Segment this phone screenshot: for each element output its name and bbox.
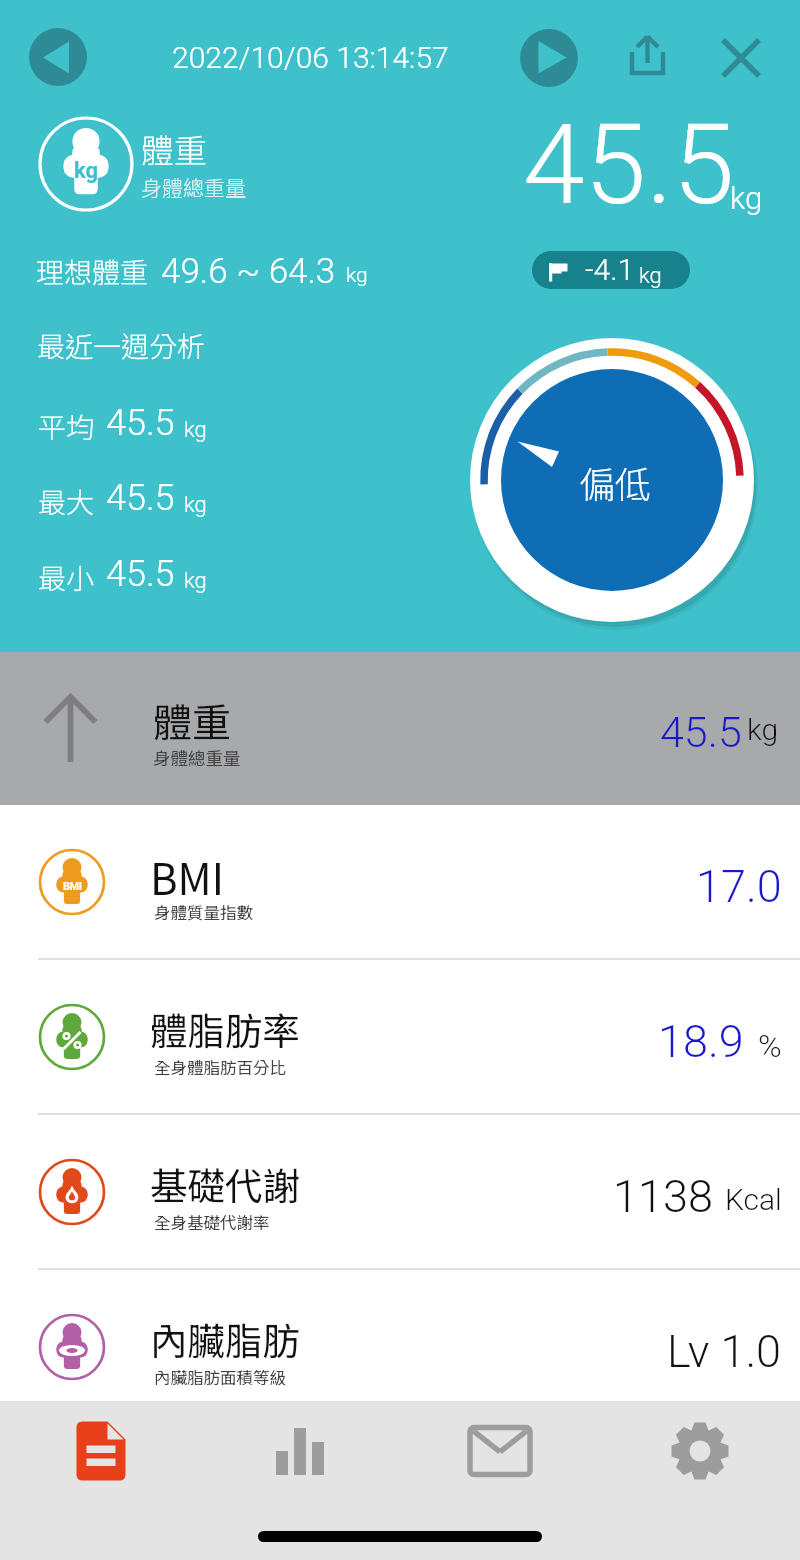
staticText: 45.5 (106, 553, 175, 595)
staticText: kg (747, 712, 779, 747)
staticText: BMI (150, 846, 225, 907)
staticText: kg (74, 158, 99, 184)
button[interactable]: 內臟脂肪 (0, 1270, 800, 1423)
staticText: 最近一週分析 (37, 325, 206, 366)
staticText: kg (184, 417, 207, 443)
staticText: BMI (63, 880, 82, 893)
button[interactable]: Records (51, 1401, 151, 1501)
staticText: 最大 (38, 481, 95, 522)
staticText: 49.6 ~ 64.3 (161, 251, 336, 292)
staticText: 內臟脂肪面積等級 (154, 1365, 286, 1389)
staticText: kg (639, 263, 662, 289)
button[interactable]: Mail (450, 1401, 550, 1501)
staticText: kg (184, 568, 207, 594)
staticText: Kcal (725, 1182, 782, 1217)
staticText: 平均 (38, 406, 95, 447)
staticText: 內臟脂肪 (150, 1311, 300, 1365)
button[interactable]: 體重 (0, 652, 800, 805)
staticText: kg (346, 263, 368, 288)
staticText: 全身體脂肪百分比 (154, 1055, 286, 1079)
button[interactable]: -4.1 (532, 251, 690, 289)
staticText: 身體總重量 (153, 745, 241, 770)
staticText: 體重 (153, 692, 232, 748)
staticText: 全身基礎代謝率 (154, 1210, 270, 1234)
button[interactable]: Share (612, 22, 682, 92)
staticText: 體重 (141, 125, 207, 173)
staticText: 45.5 (106, 402, 175, 444)
staticText: kg (184, 492, 207, 518)
staticText: 17.0 (696, 860, 782, 913)
staticText: 45.5 (523, 100, 735, 230)
button[interactable]: Settings (650, 1401, 750, 1501)
button[interactable]: Close (706, 22, 776, 92)
button[interactable]: Back (29, 28, 87, 86)
staticText: 理想體重 (36, 251, 149, 292)
staticText: 基礎代謝 (150, 1156, 300, 1210)
staticText: 2022/10/06 13:14:57 (172, 40, 449, 75)
staticText: % (758, 1027, 782, 1065)
staticText: 偏低 (579, 456, 652, 508)
staticText: 體脂肪率 (150, 1001, 300, 1055)
button[interactable]: 基礎代謝 (0, 1115, 800, 1268)
staticText: 45.5 (660, 707, 742, 757)
staticText: -4.1 (585, 252, 635, 287)
staticText: 最小 (38, 557, 95, 598)
staticText: kg (730, 180, 763, 216)
staticText: 身體質量指數 (154, 900, 253, 924)
button[interactable]: Charts (250, 1401, 350, 1501)
staticText: 1138 (613, 1170, 713, 1223)
button[interactable]: BMI (0, 805, 800, 958)
staticText: 身體總重量 (141, 172, 246, 202)
button[interactable]: Play (520, 29, 578, 87)
button[interactable]: 體脂肪率 (0, 960, 800, 1113)
staticText: Lv 1.0 (667, 1325, 782, 1378)
staticText: 18.9 (658, 1015, 744, 1068)
staticText: 45.5 (106, 477, 175, 519)
